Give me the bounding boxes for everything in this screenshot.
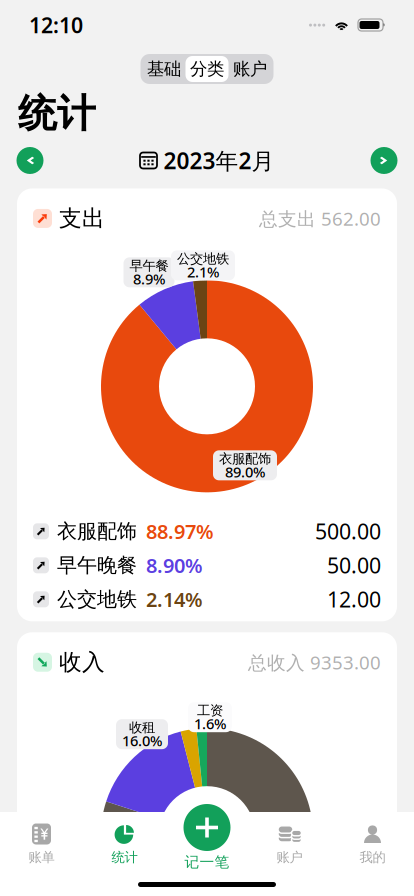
staticText: 1.6% bbox=[194, 714, 226, 733]
staticText: 收入 bbox=[59, 648, 105, 676]
button[interactable]: 下一月 bbox=[362, 143, 406, 177]
staticText: 账户 bbox=[276, 849, 302, 865]
staticText: 8.90% bbox=[146, 552, 203, 579]
staticText: 89.0% bbox=[225, 462, 265, 482]
button[interactable]: 账户 bbox=[228, 56, 271, 82]
staticText: 衣服配饰 bbox=[219, 451, 271, 467]
button[interactable]: 记一笔 bbox=[166, 804, 248, 871]
button[interactable]: 衣服配饰 bbox=[17, 514, 397, 548]
staticText: 公交地铁 bbox=[177, 251, 229, 267]
button[interactable]: 账单 bbox=[0, 823, 83, 871]
staticText: 收租 bbox=[129, 719, 155, 736]
staticText: 记一笔 bbox=[184, 853, 229, 871]
staticText: 16.0% bbox=[122, 731, 162, 750]
staticText: 88.97% bbox=[146, 518, 214, 545]
staticText: 总支出 562.00 bbox=[259, 206, 381, 231]
staticText: 早午晚餐 bbox=[57, 553, 137, 578]
staticText: 账户 bbox=[233, 58, 267, 80]
staticText: 账单 bbox=[28, 849, 54, 865]
staticText: 12:10 bbox=[29, 11, 83, 39]
button[interactable]: 公交地铁 bbox=[17, 582, 397, 616]
staticText: 支出 bbox=[59, 204, 105, 232]
button[interactable]: 我的 bbox=[331, 823, 414, 871]
staticText: 统计 bbox=[111, 849, 137, 865]
staticText: 12.00 bbox=[327, 585, 381, 613]
staticText: 工资 bbox=[197, 702, 223, 719]
staticText: 统计 bbox=[18, 90, 96, 137]
button[interactable]: 账户 bbox=[248, 823, 331, 871]
button[interactable]: 统计 bbox=[83, 823, 166, 871]
staticText: 分类 bbox=[190, 58, 224, 80]
staticText: 总收入 9353.00 bbox=[248, 650, 381, 675]
staticText: 8.9% bbox=[133, 269, 165, 289]
staticText: 基础 bbox=[147, 58, 181, 80]
staticText: 公交地铁 bbox=[57, 587, 137, 612]
button[interactable]: 早午晚餐 bbox=[17, 548, 397, 582]
button[interactable]: 分类 bbox=[185, 56, 228, 82]
button[interactable]: 上一月 bbox=[8, 143, 52, 177]
staticText: 我的 bbox=[359, 849, 385, 865]
staticText: 500.00 bbox=[315, 517, 381, 545]
staticText: 衣服配饰 bbox=[57, 519, 137, 544]
staticText: 2.14% bbox=[146, 586, 203, 613]
button[interactable]: 基础 bbox=[142, 56, 185, 82]
staticText: 50.00 bbox=[327, 551, 381, 579]
staticText: 2.1% bbox=[187, 262, 219, 282]
staticText: 2023年2月 bbox=[163, 145, 274, 175]
staticText: 早午餐 bbox=[129, 258, 168, 274]
